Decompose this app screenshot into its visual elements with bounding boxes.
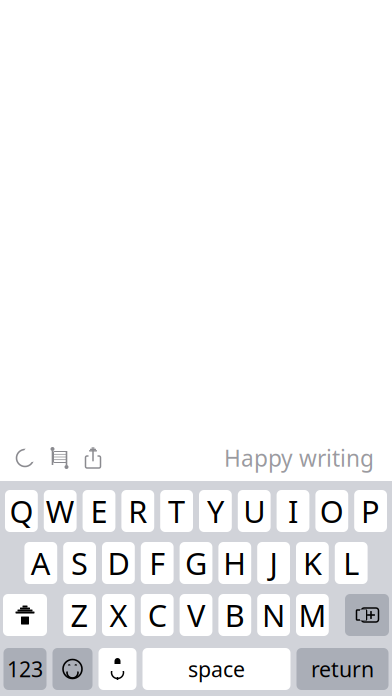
staticText: K [303,543,322,583]
staticText: F [149,543,165,583]
staticText: Z [71,595,89,635]
button[interactable]: X [102,594,135,636]
staticText: T [168,491,185,531]
staticText: L [343,543,359,583]
staticText: X [109,595,127,635]
staticText: return [311,655,374,683]
staticText: Y [207,491,224,531]
staticText: B [225,595,245,635]
button[interactable]: space [142,648,290,690]
button[interactable]: Dictate [98,648,136,690]
button[interactable]: return [296,648,388,690]
staticText: Happy writing [224,443,374,473]
button[interactable]: V [180,594,212,636]
staticText: space [188,655,245,683]
button[interactable]: C [141,594,174,636]
staticText: U [243,491,265,531]
button[interactable]: S [63,542,96,584]
button[interactable]: Q [5,490,38,532]
button[interactable]: Share [76,441,110,475]
button[interactable]: J [257,542,290,584]
staticText: H [223,543,246,583]
button[interactable]: F [141,542,174,584]
button[interactable]: I [277,490,309,532]
button[interactable]: 123 [3,648,46,690]
button[interactable]: Emoji [52,648,92,690]
staticText: S [71,543,88,583]
staticText: E [90,491,107,531]
button[interactable]: R [121,490,154,532]
button[interactable]: G [180,542,212,584]
staticText: A [31,543,51,583]
button[interactable]: E [83,490,115,532]
button[interactable]: O [315,490,348,532]
staticText: W [46,491,75,531]
button[interactable]: L [335,542,368,584]
button[interactable]: Night mode [8,441,42,475]
button[interactable]: Delete [345,594,389,636]
staticText: G [185,543,207,583]
staticText: 123 [7,655,43,683]
button[interactable]: N [257,594,290,636]
staticText: Q [9,491,33,531]
button[interactable]: M [296,594,329,636]
button[interactable]: Ruler [42,441,76,475]
button[interactable]: T [160,490,193,532]
button[interactable]: U [238,490,271,532]
staticText: M [298,595,326,635]
staticText: V [187,595,205,635]
staticText: J [270,543,278,583]
button[interactable]: W [44,490,77,532]
staticText: I [288,491,298,531]
staticText: N [262,595,285,635]
button[interactable]: Shift [3,594,47,636]
button[interactable]: D [102,542,135,584]
button[interactable]: H [218,542,251,584]
staticText: O [320,491,344,531]
button[interactable]: K [296,542,329,584]
button[interactable]: Z [63,594,96,636]
button[interactable]: Y [199,490,232,532]
staticText: P [361,491,380,531]
staticText: D [107,543,129,583]
button[interactable]: B [218,594,251,636]
button[interactable]: A [24,542,57,584]
button[interactable]: P [354,490,387,532]
staticText: R [128,491,147,531]
staticText: C [148,595,167,635]
